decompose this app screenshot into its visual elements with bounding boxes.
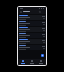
button[interactable]: Home tab xyxy=(19,59,27,64)
button[interactable] xyxy=(18,39,46,44)
button[interactable]: Tab xyxy=(28,59,36,64)
button[interactable] xyxy=(18,45,46,50)
button[interactable] xyxy=(18,27,46,32)
button[interactable] xyxy=(18,21,46,26)
button[interactable]: Add xyxy=(41,54,44,57)
button[interactable]: Search xyxy=(39,11,41,13)
button[interactable] xyxy=(18,15,46,20)
button[interactable]: Menu xyxy=(18,9,46,14)
button[interactable]: Tab xyxy=(37,59,45,64)
button[interactable] xyxy=(18,33,46,38)
